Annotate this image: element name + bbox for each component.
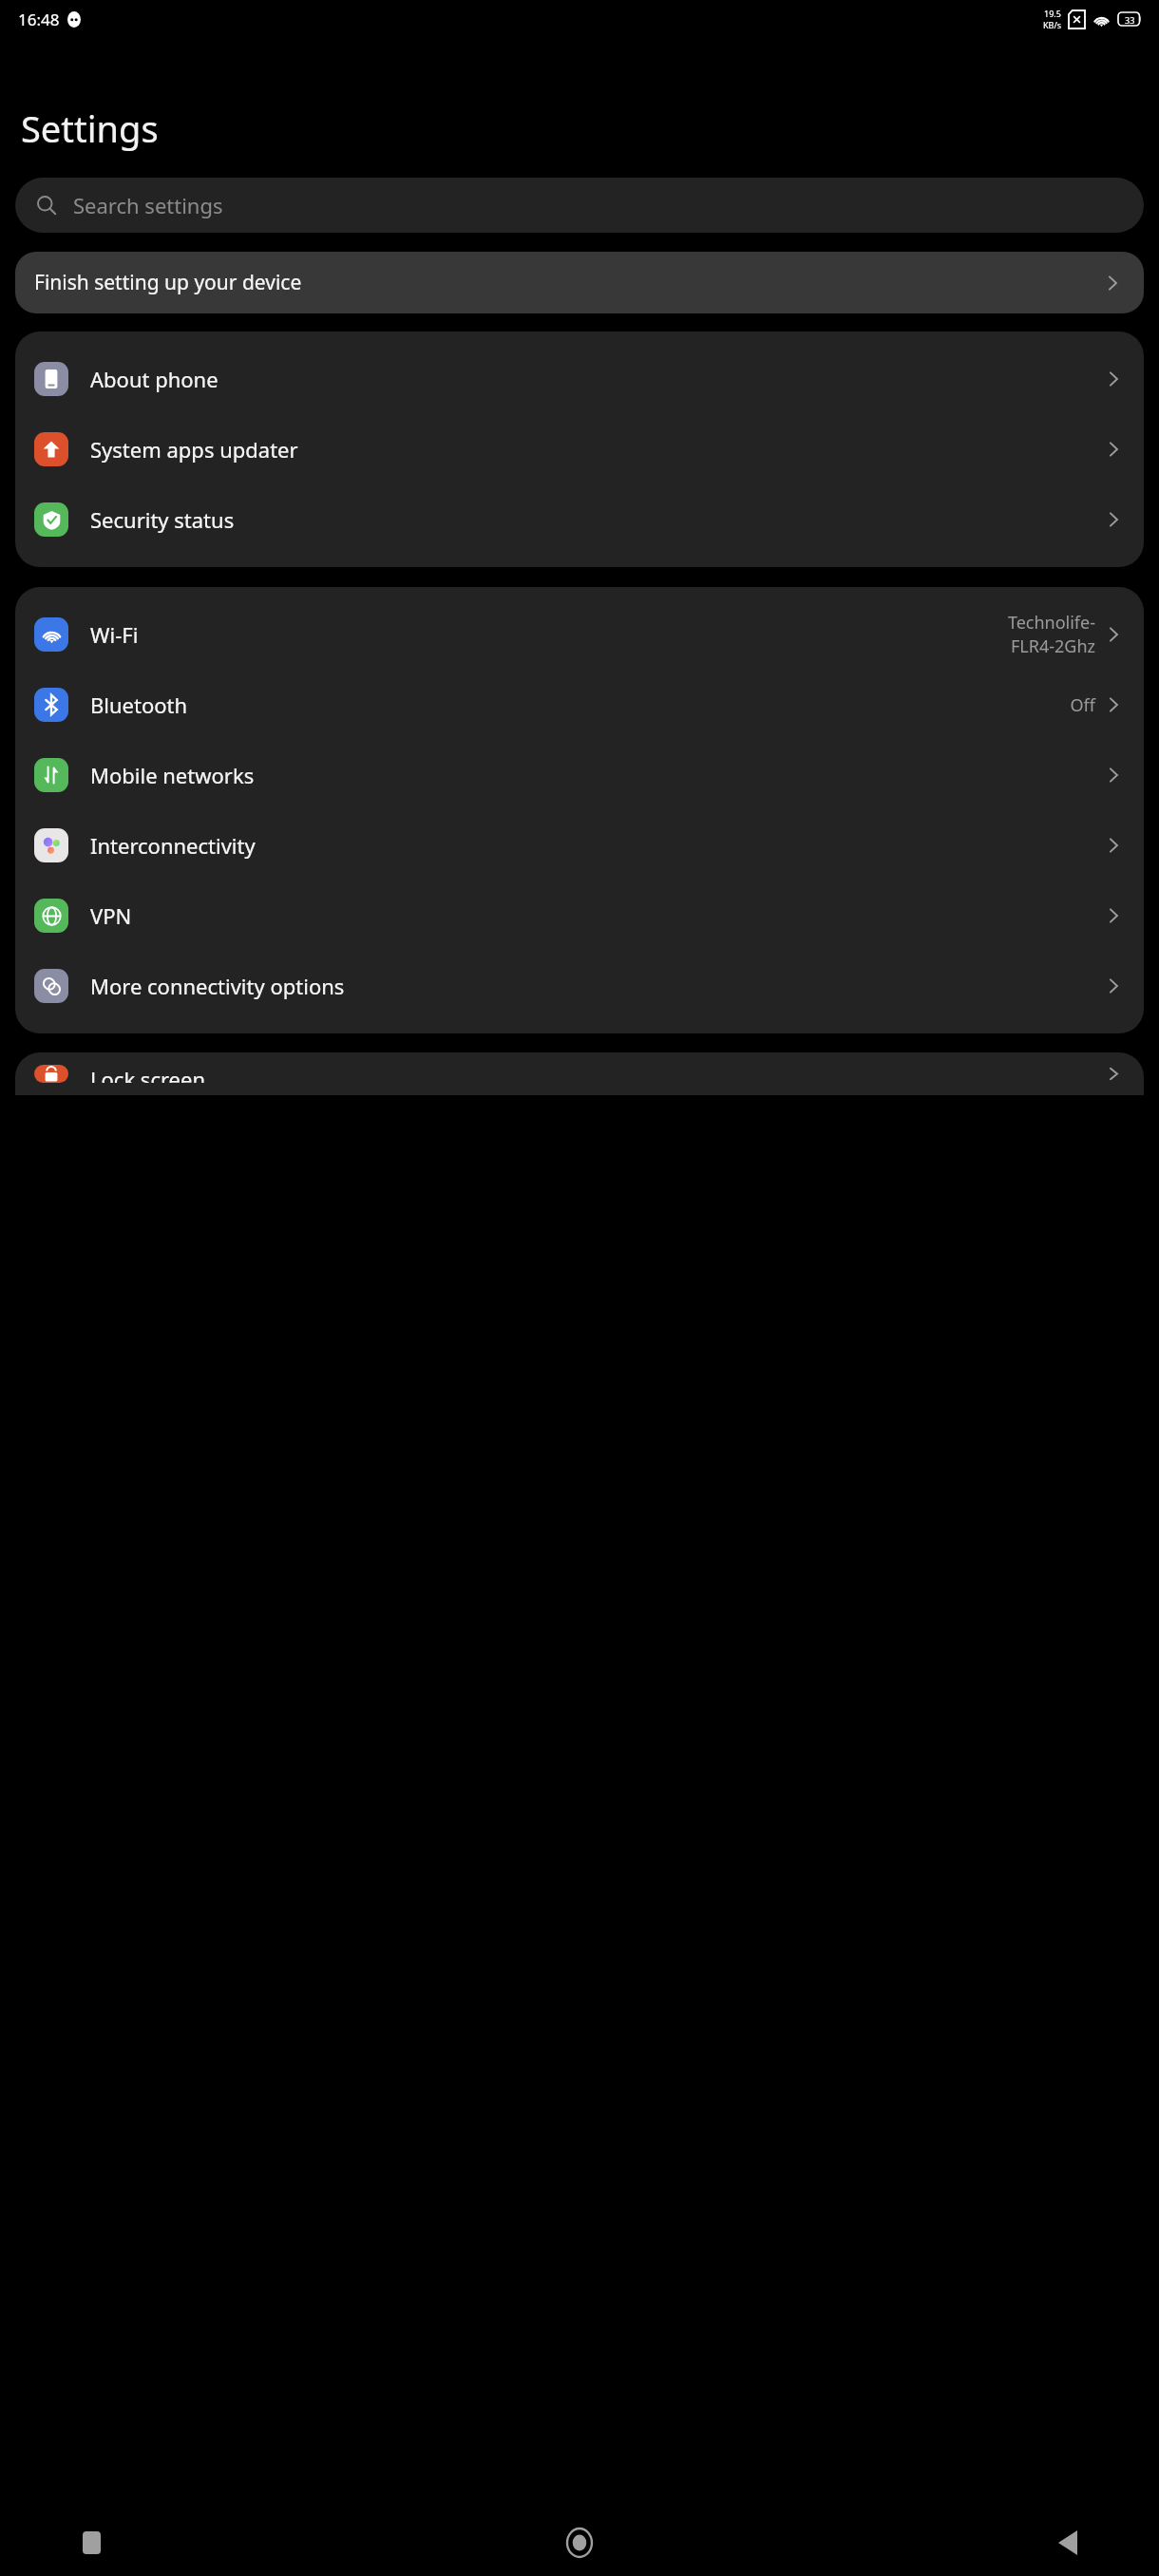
button[interactable]: Home — [555, 2518, 604, 2567]
button[interactable]: Interconnectivity — [15, 810, 1144, 881]
staticText: Search settings — [73, 191, 223, 219]
staticText: Off — [1070, 693, 1095, 717]
staticText: Interconnectivity — [90, 831, 256, 860]
staticText: 16:48 — [18, 9, 60, 30]
button[interactable]: More connectivity options — [15, 951, 1144, 1021]
button[interactable]: Wi-Fi — [15, 599, 1144, 670]
staticText: Mobile networks — [90, 761, 255, 789]
staticText: About phone — [90, 365, 218, 393]
button[interactable]: About phone — [15, 344, 1144, 414]
staticText: Bluetooth — [90, 691, 188, 719]
staticText: Security status — [90, 505, 235, 534]
button[interactable]: Back — [1043, 2518, 1092, 2567]
button[interactable]: VPN — [15, 881, 1144, 951]
staticText: VPN — [90, 901, 132, 930]
button[interactable]: Recent apps — [66, 2518, 116, 2567]
staticText: KB/s — [1043, 19, 1062, 30]
button[interactable]: Security status — [15, 484, 1144, 555]
staticText: 19.5 — [1044, 8, 1061, 19]
staticText: 33 — [1125, 14, 1135, 24]
staticText: Technolife-FLR4-2Ghz — [984, 611, 1095, 658]
staticText: Finish setting up your device — [34, 269, 1102, 296]
staticText: Settings — [21, 104, 159, 153]
button[interactable]: Mobile networks — [15, 740, 1144, 810]
button[interactable]: Search settings — [15, 178, 1144, 233]
button[interactable]: System apps updater — [15, 414, 1144, 484]
staticText: More connectivity options — [90, 972, 345, 1000]
staticText: System apps updater — [90, 435, 298, 464]
staticText: Wi-Fi — [90, 620, 139, 649]
staticText: Lock screen — [90, 1065, 206, 1083]
button[interactable]: Lock screen — [15, 1065, 1144, 1083]
button[interactable]: Bluetooth — [15, 670, 1144, 740]
button[interactable]: Finish setting up your device — [15, 252, 1144, 313]
